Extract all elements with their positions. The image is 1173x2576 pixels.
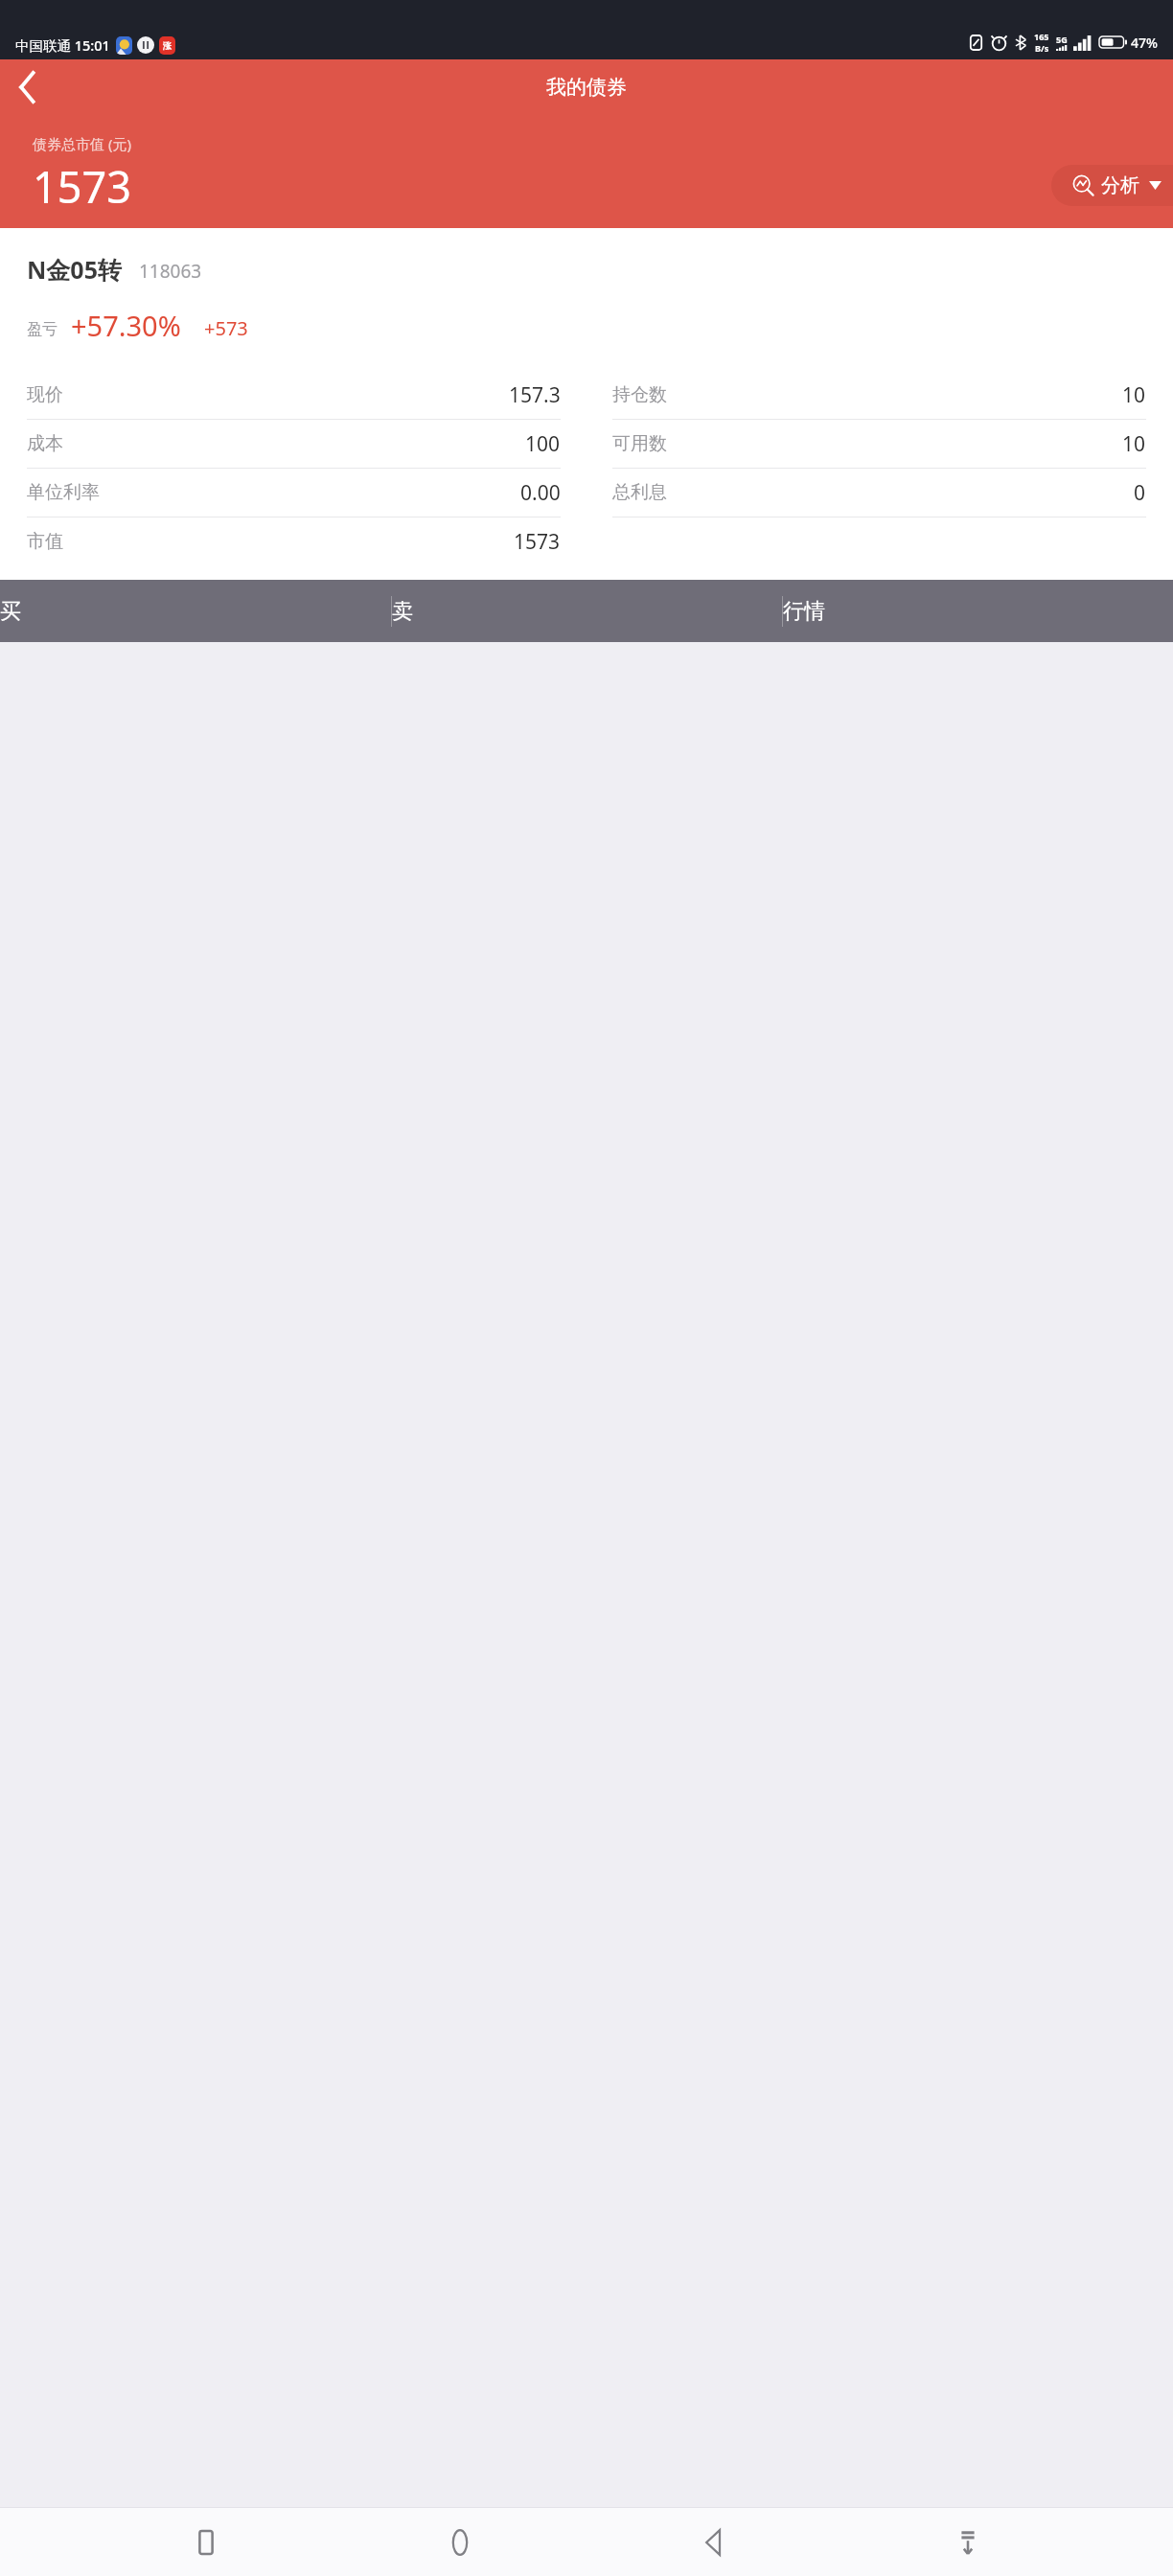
staticText: 5G [1056, 34, 1068, 45]
staticText: 买 [0, 598, 391, 625]
staticText: 盈亏 [27, 320, 57, 339]
button[interactable]: 分析 [1051, 165, 1173, 206]
staticText: 118063 [139, 259, 202, 284]
staticText: 165 [1034, 31, 1049, 42]
staticText: 100 [525, 430, 561, 458]
staticText: 总利息 [612, 481, 667, 504]
staticText: 0 [1134, 479, 1146, 507]
staticText: 可用数 [612, 432, 667, 455]
staticText: 单位利率 [27, 481, 100, 504]
button[interactable]: Back [0, 60, 54, 114]
button[interactable]: 行情 [783, 580, 1173, 642]
button[interactable]: 买 [0, 580, 391, 642]
staticText: +573 [204, 315, 248, 341]
staticText: 涨 [163, 40, 172, 51]
button[interactable]: N金05转 [0, 228, 1173, 580]
staticText: 47% [1131, 34, 1158, 52]
staticText: 10 [1122, 430, 1146, 458]
staticText: 市值 [27, 530, 63, 553]
staticText: 10 [1122, 381, 1146, 409]
button[interactable]: 卖 [392, 580, 782, 642]
staticText: 中国联通 15:01 [15, 35, 110, 55]
staticText: B/s [1035, 42, 1049, 54]
staticText: 分析 [1101, 173, 1139, 197]
button[interactable]: Scroll to bottom [938, 2513, 998, 2572]
staticText: 157.3 [509, 381, 561, 409]
staticText: 0.00 [520, 479, 561, 507]
staticText: 我的债券 [546, 75, 627, 100]
staticText: 持仓数 [612, 383, 667, 406]
staticText: 行情 [783, 598, 1173, 625]
staticText: +57.30% [71, 307, 181, 344]
staticText: 债券总市值 (元) [33, 134, 131, 153]
button[interactable]: Home [430, 2513, 490, 2572]
staticText: N金05转 [27, 253, 122, 286]
staticText: 卖 [392, 598, 782, 625]
staticText: 1573 [514, 528, 561, 556]
staticText: 1573 [33, 157, 131, 216]
staticText: 现价 [27, 383, 63, 406]
staticText: 成本 [27, 432, 63, 455]
button[interactable]: Back [684, 2513, 744, 2572]
button[interactable]: Recents [176, 2513, 236, 2572]
